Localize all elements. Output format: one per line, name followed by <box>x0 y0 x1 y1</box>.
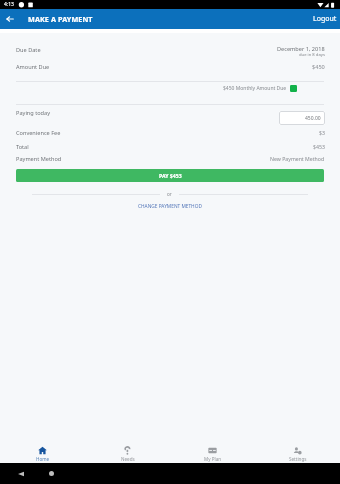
button[interactable]: Back <box>0 9 20 29</box>
staticText: Paying today <box>16 109 51 117</box>
staticText: Home <box>36 456 50 462</box>
staticText: due in 8 days <box>299 52 325 58</box>
button[interactable]: My Plan <box>170 442 255 463</box>
staticText: Needs <box>121 456 135 462</box>
staticText: $450 <box>312 63 325 71</box>
staticText: Total <box>16 143 29 151</box>
staticText: PAY $453 <box>159 172 182 179</box>
button[interactable]: 450.00 <box>279 111 325 125</box>
staticText: MAKE A PAYMENT <box>28 14 93 24</box>
button[interactable]: Home <box>0 442 85 463</box>
staticText: Payment Method <box>16 155 62 163</box>
staticText: $453 <box>313 143 325 150</box>
button[interactable]: CHANGE PAYMENT METHOD <box>0 202 340 211</box>
staticText: Convenience Fee <box>16 129 61 137</box>
button[interactable]: Settings <box>255 442 340 463</box>
staticText: 450.00 <box>305 115 321 122</box>
other: Home <box>49 471 54 476</box>
staticText: 4:13 <box>4 1 14 8</box>
button[interactable]: Monthly amount due selected <box>290 85 297 92</box>
button[interactable]: Needs <box>85 442 170 463</box>
button[interactable]: PAY $453 <box>16 169 324 182</box>
staticText: Amount Due <box>16 63 50 71</box>
staticText: CHANGE PAYMENT METHOD <box>138 203 202 210</box>
staticText: or <box>167 191 172 197</box>
staticText: December 1, 2018 <box>277 45 325 53</box>
staticText: $450 Monthly Amount Due <box>223 85 287 92</box>
staticText: Logout <box>313 14 337 24</box>
button[interactable]: Logout <box>313 14 340 24</box>
staticText: $3 <box>319 129 325 136</box>
staticText: Due Date <box>16 46 41 54</box>
other: Back <box>18 471 24 477</box>
staticText: Settings <box>289 456 307 462</box>
staticText: My Plan <box>204 456 222 462</box>
staticText: New Payment Method <box>270 155 325 162</box>
